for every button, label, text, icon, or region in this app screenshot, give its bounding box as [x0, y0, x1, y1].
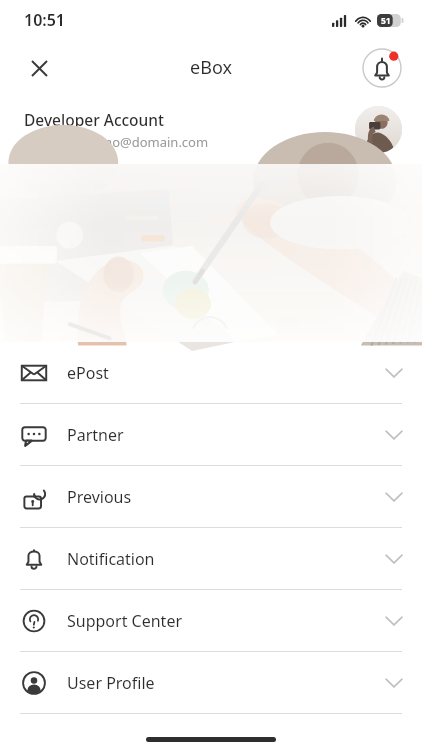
- button[interactable]: Profile photo: [355, 106, 402, 153]
- staticText: User Profile: [67, 672, 155, 694]
- button[interactable]: Notifications: [362, 48, 402, 88]
- button[interactable]: Developer Account: [0, 95, 422, 164]
- staticText: Support Center: [67, 610, 183, 632]
- staticText: Partner: [67, 424, 124, 446]
- staticText: Developer Account: [24, 109, 164, 130]
- button[interactable]: Close: [20, 49, 58, 87]
- button[interactable]: Partner: [0, 404, 422, 465]
- staticText: 51: [381, 15, 391, 27]
- staticText: 10:51: [24, 9, 66, 31]
- button[interactable]: ePost: [0, 342, 422, 403]
- button[interactable]: Notification: [0, 528, 422, 589]
- staticText: Previous: [67, 486, 132, 508]
- staticText: developerdemo@domain.com: [24, 133, 209, 151]
- button[interactable]: Support Center: [0, 590, 422, 651]
- staticText: Notification: [67, 548, 155, 570]
- button[interactable]: User Profile: [0, 652, 422, 713]
- button[interactable]: Previous: [0, 466, 422, 527]
- staticText: eBox: [190, 55, 232, 80]
- staticText: ePost: [67, 362, 109, 384]
